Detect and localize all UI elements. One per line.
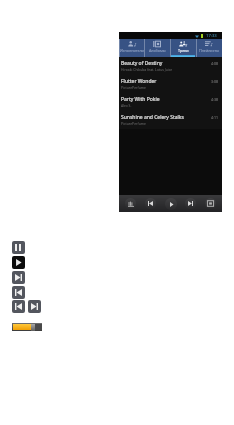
- staticText: Sunshine and Celery Stalks: [121, 114, 184, 121]
- staticText: Flutter Wonder: [121, 78, 157, 85]
- button[interactable]: Now playing: [205, 198, 216, 209]
- button[interactable]: Next: [185, 198, 196, 209]
- staticText: Alex S.: [121, 103, 132, 108]
- button[interactable]: Плейлисты: [196, 39, 222, 57]
- staticText: Треки: [178, 48, 189, 53]
- staticText: 17:33: [206, 33, 217, 39]
- button[interactable]: Треки: [170, 39, 196, 57]
- staticText: Party With Pokie: [121, 96, 160, 103]
- button[interactable]: Play: [165, 198, 177, 210]
- staticText: 4:11: [211, 115, 218, 120]
- staticText: 3:08: [211, 79, 218, 84]
- button[interactable]: Flutter Wonder: [119, 75, 222, 93]
- button[interactable]: Seek bar: [12, 323, 42, 331]
- staticText: Beauty of Destiny: [121, 60, 163, 67]
- button[interactable]: Previous: [145, 198, 156, 209]
- staticText: PicturePerfume: [121, 85, 146, 90]
- staticText: Плейлисты: [199, 48, 219, 53]
- button[interactable]: Sunshine and Celery Stalks: [119, 111, 222, 129]
- button[interactable]: Previous track: [12, 286, 25, 299]
- button[interactable]: Previous: [12, 300, 25, 313]
- staticText: 4:08: [211, 61, 218, 66]
- staticText: Hiroaki Chikuba feat. Lotus Juice: [121, 67, 173, 72]
- button[interactable]: Альбомы: [144, 39, 170, 57]
- staticText: Исполнители: [120, 48, 144, 53]
- button[interactable]: Исполнители: [119, 39, 144, 57]
- button[interactable]: Pause: [12, 241, 25, 254]
- button[interactable]: Play: [12, 256, 25, 269]
- button[interactable]: Next: [28, 300, 41, 313]
- button[interactable]: Next track: [12, 271, 25, 284]
- button[interactable]: Library: [125, 198, 136, 209]
- staticText: Альбомы: [149, 48, 166, 53]
- staticText: 4:38: [211, 97, 218, 102]
- button[interactable]: Beauty of Destiny: [119, 57, 222, 75]
- button[interactable]: Party With Pokie: [119, 93, 222, 111]
- staticText: PicturePerfume: [121, 121, 146, 126]
